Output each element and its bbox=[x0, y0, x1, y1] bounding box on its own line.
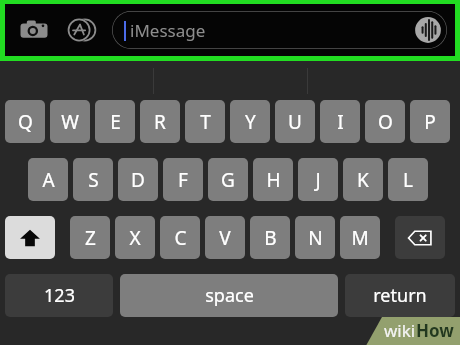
button[interactable]: U bbox=[275, 100, 315, 143]
button[interactable]: H bbox=[253, 158, 293, 201]
button[interactable]: F bbox=[163, 158, 203, 201]
staticText: L bbox=[403, 167, 413, 193]
button[interactable]: return bbox=[345, 274, 455, 317]
staticText: D bbox=[131, 167, 145, 193]
staticText: Z bbox=[85, 225, 96, 251]
staticText: 123 bbox=[44, 283, 75, 308]
button[interactable]: Shift bbox=[5, 216, 55, 259]
button[interactable]: Z bbox=[70, 216, 110, 259]
staticText: V bbox=[219, 225, 231, 251]
staticText: X bbox=[129, 225, 141, 251]
button[interactable]: E bbox=[95, 100, 135, 143]
staticText: G bbox=[221, 167, 235, 193]
staticText: N bbox=[308, 225, 323, 251]
staticText: S bbox=[88, 167, 99, 193]
staticText: R bbox=[154, 109, 166, 135]
button[interactable]: G bbox=[208, 158, 248, 201]
button[interactable]: P bbox=[410, 100, 450, 143]
button[interactable]: X bbox=[115, 216, 155, 259]
staticText: B bbox=[264, 225, 277, 251]
button[interactable]: space bbox=[120, 274, 338, 317]
staticText: H bbox=[266, 167, 281, 193]
button[interactable]: T bbox=[185, 100, 225, 143]
button[interactable]: K bbox=[343, 158, 383, 201]
button[interactable]: L bbox=[388, 158, 428, 201]
staticText: A bbox=[42, 167, 55, 193]
button[interactable]: Y bbox=[230, 100, 270, 143]
button[interactable]: Backspace bbox=[395, 216, 445, 259]
staticText: O bbox=[378, 109, 393, 135]
button[interactable]: Record audio message bbox=[413, 15, 443, 45]
staticText: W bbox=[61, 109, 79, 135]
button[interactable]: W bbox=[50, 100, 90, 143]
button[interactable]: V bbox=[205, 216, 245, 259]
staticText: F bbox=[178, 167, 188, 193]
button[interactable]: Camera bbox=[14, 10, 54, 50]
button[interactable]: B bbox=[250, 216, 290, 259]
button[interactable]: iMessage bbox=[112, 11, 447, 49]
button[interactable]: I bbox=[320, 100, 360, 143]
staticText: I bbox=[337, 109, 344, 135]
button[interactable]: M bbox=[340, 216, 380, 259]
button[interactable]: R bbox=[140, 100, 180, 143]
button[interactable]: S bbox=[73, 158, 113, 201]
staticText: C bbox=[174, 225, 187, 251]
staticText: wiki bbox=[384, 319, 416, 342]
button[interactable]: A bbox=[28, 158, 68, 201]
staticText: iMessage bbox=[130, 19, 206, 42]
staticText: M bbox=[351, 225, 369, 251]
staticText: return bbox=[373, 283, 427, 308]
button[interactable]: D bbox=[118, 158, 158, 201]
staticText: E bbox=[110, 109, 121, 135]
button[interactable]: 123 bbox=[5, 274, 113, 317]
staticText: space bbox=[205, 283, 254, 308]
button[interactable]: O bbox=[365, 100, 405, 143]
staticText: K bbox=[357, 167, 369, 193]
button[interactable]: Apps bbox=[61, 10, 101, 50]
staticText: J bbox=[315, 167, 321, 193]
button[interactable]: C bbox=[160, 216, 200, 259]
staticText: How bbox=[416, 319, 454, 342]
button[interactable]: J bbox=[298, 158, 338, 201]
button[interactable]: N bbox=[295, 216, 335, 259]
button[interactable]: Q bbox=[5, 100, 45, 143]
staticText: T bbox=[200, 109, 211, 135]
staticText: P bbox=[424, 109, 436, 135]
staticText: Y bbox=[245, 109, 256, 135]
staticText: Q bbox=[18, 109, 33, 135]
staticText: U bbox=[288, 109, 302, 135]
